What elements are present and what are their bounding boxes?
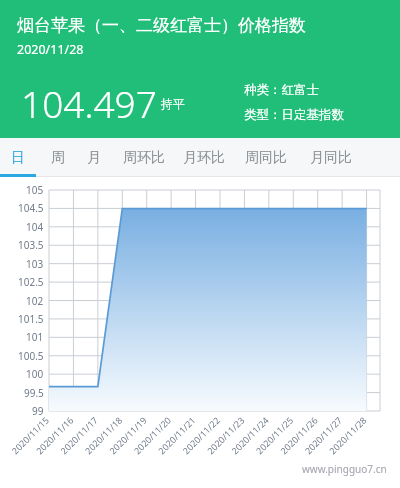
button[interactable]: 周环比 — [116, 138, 172, 177]
staticText: 类型：日定基指数 — [244, 107, 344, 123]
button[interactable]: 月环比 — [176, 138, 232, 177]
staticText: 种类：红富士 — [244, 82, 319, 98]
button[interactable]: 周同比 — [238, 138, 294, 177]
button[interactable]: 月同比 — [303, 138, 359, 177]
staticText: 持平 — [161, 96, 185, 111]
staticText: 月 — [87, 149, 101, 167]
staticText: 2020/11/28 — [17, 41, 84, 58]
staticText: 周同比 — [245, 149, 287, 167]
button[interactable]: 日 — [0, 138, 36, 177]
staticText: 周环比 — [123, 149, 165, 167]
staticText: 月同比 — [310, 149, 352, 167]
staticText: 日 — [11, 149, 25, 167]
staticText: 月环比 — [183, 149, 225, 167]
button[interactable]: 周 — [40, 138, 76, 177]
staticText: 烟台苹果（一、二级红富士）价格指数 — [17, 15, 306, 36]
staticText: 104.497 — [21, 78, 157, 128]
staticText: 周 — [51, 149, 65, 167]
button[interactable]: 月 — [76, 138, 112, 177]
